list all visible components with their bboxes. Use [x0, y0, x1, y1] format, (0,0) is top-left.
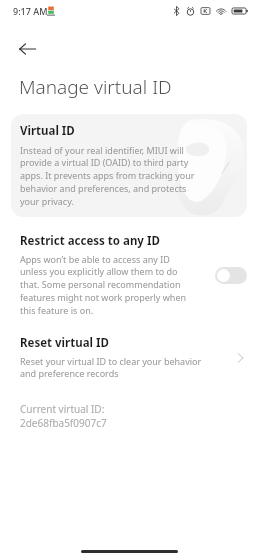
staticText: 9:17 AM: [13, 5, 48, 17]
staticText: Apps won’t be able to access any ID unle…: [20, 253, 192, 317]
staticText: Reset virtual ID: [20, 335, 109, 351]
staticText: Instead of your real identifier, MIUI wi…: [20, 144, 196, 208]
staticText: Restrict access to any ID: [20, 233, 160, 249]
button[interactable]: Restrict access to any ID: [0, 231, 258, 319]
button[interactable]: Reset virtual ID: [0, 333, 258, 382]
button[interactable]: Back: [10, 32, 44, 66]
staticText: Virtual ID: [20, 123, 75, 139]
staticText: Reset your virtual ID to clear your beha…: [20, 355, 205, 380]
staticText: Current virtual ID: 2de68fba5f0907c7: [20, 402, 107, 430]
staticText: Manage virtual ID: [19, 74, 172, 100]
button[interactable]: Restrict access to any ID toggle: [215, 267, 247, 284]
